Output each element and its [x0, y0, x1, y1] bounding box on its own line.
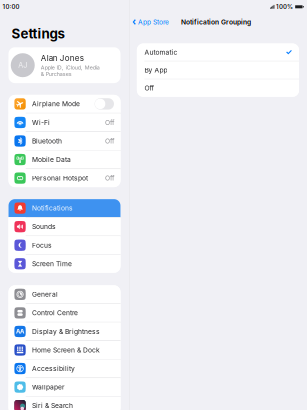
button[interactable]: AA [8, 322, 120, 340]
staticText: Apple ID, iCloud, Media & Purchases [41, 64, 100, 77]
button[interactable]: Personal Hotspot [8, 169, 120, 187]
staticText: Alan Jones [41, 53, 84, 63]
staticText: General [32, 290, 58, 298]
button[interactable]: Bluetooth [8, 132, 120, 150]
staticText: Siri & Search [32, 402, 73, 410]
staticText: Off [105, 174, 114, 182]
button[interactable]: Automatic [137, 43, 299, 61]
staticText: Sounds [32, 223, 56, 231]
staticText: 10:00 [2, 3, 19, 10]
button[interactable]: Notifications [8, 199, 120, 217]
button[interactable]: AJ [8, 47, 120, 83]
button[interactable]: Focus [8, 236, 120, 254]
staticText: Focus [32, 241, 52, 249]
staticText: Off [105, 118, 114, 126]
staticText: Notifications [32, 204, 73, 212]
staticText: Wi-Fi [32, 118, 50, 126]
staticText: Automatic [144, 48, 177, 56]
button[interactable]: Home Screen & Dock [8, 341, 120, 359]
staticText: Accessibility [32, 364, 75, 373]
staticText: App Store [138, 18, 169, 26]
button[interactable]: Off [137, 79, 299, 97]
button[interactable]: Control Centre [8, 304, 120, 322]
staticText: Home Screen & Dock [32, 346, 100, 354]
staticText: Notification Grouping [181, 18, 251, 26]
staticText: Control Centre [32, 309, 78, 317]
staticText: Wallpaper [32, 383, 65, 391]
button[interactable]: Wi-Fi [8, 113, 120, 131]
staticText: By App [144, 66, 167, 74]
staticText: Personal Hotspot [32, 174, 88, 182]
button[interactable]: Mobile Data [8, 150, 120, 168]
button[interactable]: Accessibility [8, 359, 120, 377]
button[interactable]: App Store [129, 15, 173, 29]
staticText: Mobile Data [32, 155, 71, 164]
staticText: Airplane Mode [32, 100, 80, 108]
button[interactable]: By App [137, 61, 299, 79]
button[interactable]: Screen Time [8, 255, 120, 273]
staticText: Screen Time [32, 260, 72, 268]
staticText: Settings [11, 26, 64, 42]
button[interactable]: Airplane Mode [8, 95, 120, 113]
button[interactable]: General [8, 285, 120, 303]
staticText: 100% [276, 3, 293, 10]
button[interactable]: Wallpaper [8, 378, 120, 396]
staticText: AA [16, 328, 24, 335]
staticText: Off [144, 84, 153, 92]
staticText: Bluetooth [32, 137, 62, 145]
staticText: AJ [18, 61, 27, 69]
staticText: Display & Brightness [32, 327, 100, 335]
staticText: Off [105, 137, 114, 145]
button[interactable]: Siri & Search [8, 397, 120, 410]
button[interactable]: Sounds [8, 218, 120, 236]
